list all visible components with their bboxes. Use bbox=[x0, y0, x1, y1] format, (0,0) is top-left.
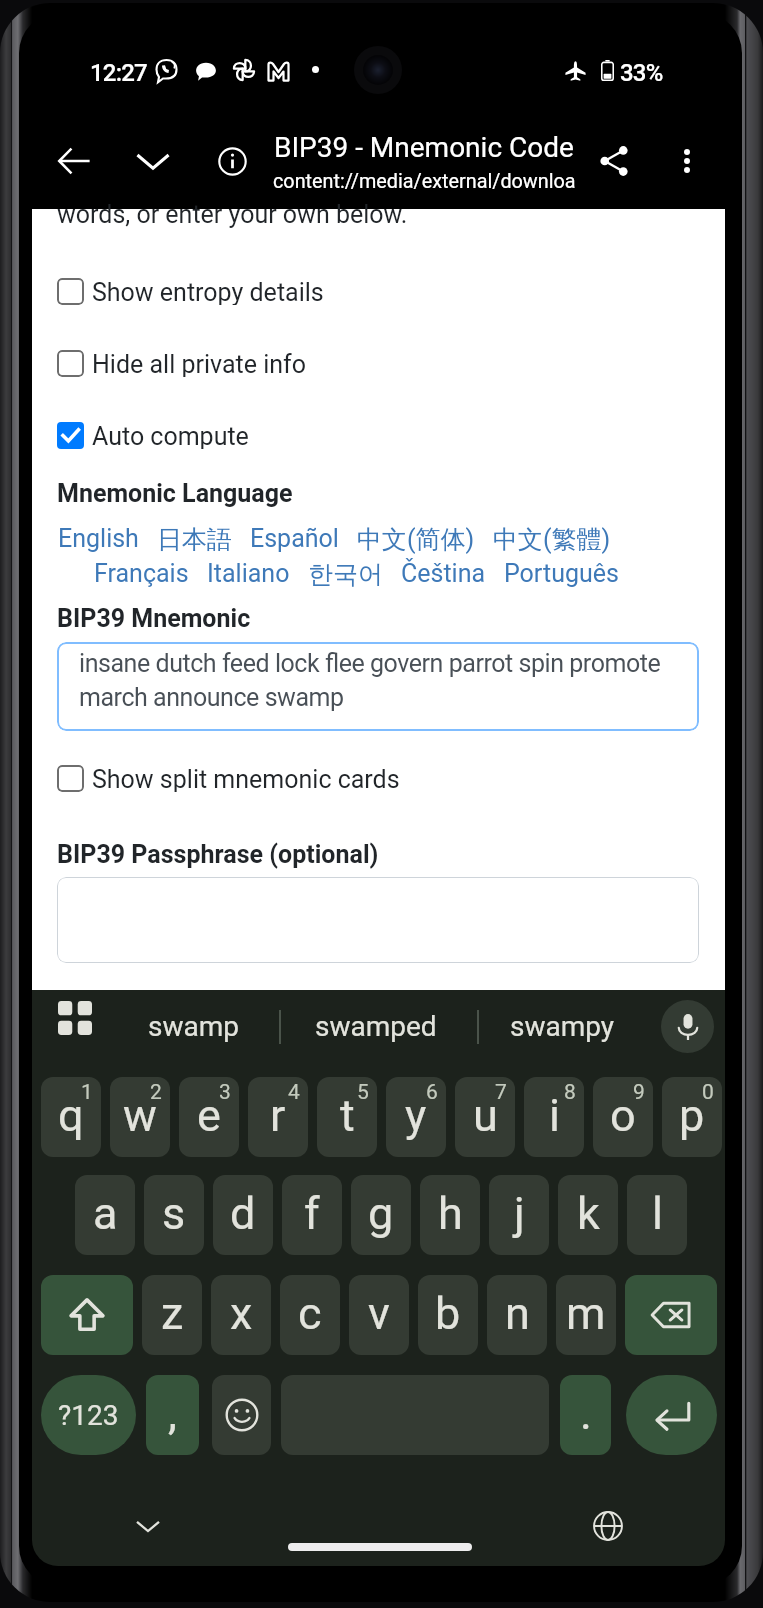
button[interactable]: Show entropy details bbox=[57, 278, 324, 305]
staticText: 0 bbox=[702, 1080, 714, 1105]
button[interactable]: p bbox=[662, 1077, 722, 1157]
button[interactable]: Enter bbox=[626, 1375, 717, 1455]
staticText: y bbox=[405, 1089, 427, 1142]
button[interactable]: Show split mnemonic cards bbox=[57, 765, 400, 792]
button[interactable]: Português bbox=[504, 559, 619, 588]
button[interactable]: u bbox=[455, 1077, 515, 1157]
button[interactable]: Emoji bbox=[212, 1375, 271, 1455]
staticText: e bbox=[197, 1089, 221, 1142]
button[interactable]: Collapse bbox=[126, 134, 180, 188]
button[interactable]: y bbox=[386, 1077, 446, 1157]
staticText: swamped bbox=[315, 1010, 437, 1043]
staticText: d bbox=[230, 1187, 256, 1240]
staticText: 5 bbox=[357, 1080, 369, 1105]
staticText: Mnemonic Language bbox=[57, 479, 293, 508]
button[interactable]: r bbox=[248, 1077, 308, 1157]
staticText: w bbox=[123, 1089, 157, 1142]
button[interactable]: insane dutch feed lock flee govern parro… bbox=[57, 642, 699, 731]
button[interactable]: Auto compute bbox=[57, 422, 249, 449]
staticText: BIP39 - Mnemonic Code bbox=[274, 131, 574, 164]
button[interactable]: a bbox=[75, 1175, 135, 1255]
staticText: insane dutch feed lock flee govern parro… bbox=[79, 649, 679, 712]
staticText: Auto compute bbox=[92, 422, 249, 449]
button[interactable]: t bbox=[317, 1077, 377, 1157]
button[interactable]: o bbox=[593, 1077, 653, 1157]
button[interactable]: v bbox=[349, 1275, 409, 1355]
button[interactable]: . bbox=[560, 1375, 611, 1455]
button[interactable]: ?123 bbox=[41, 1375, 136, 1455]
staticText: x bbox=[230, 1287, 253, 1340]
staticText: b bbox=[435, 1287, 461, 1340]
button[interactable]: x bbox=[211, 1275, 271, 1355]
button[interactable]: c bbox=[280, 1275, 340, 1355]
staticText: 8 bbox=[564, 1080, 576, 1105]
staticText: BIP39 Passphrase (optional) bbox=[57, 840, 379, 869]
button[interactable]: k bbox=[558, 1175, 618, 1255]
button[interactable]: 中文(简体) bbox=[357, 524, 475, 555]
button[interactable]: e bbox=[179, 1077, 239, 1157]
button[interactable]: j bbox=[489, 1175, 549, 1255]
button[interactable]: f bbox=[282, 1175, 342, 1255]
staticText: j bbox=[514, 1187, 525, 1240]
button[interactable]: Čeština bbox=[401, 559, 486, 588]
button[interactable]: d bbox=[213, 1175, 273, 1255]
staticText: swampy bbox=[510, 1010, 615, 1043]
button[interactable]: q bbox=[41, 1077, 101, 1157]
button[interactable]: Page info bbox=[205, 134, 259, 188]
staticText: . bbox=[580, 1387, 592, 1440]
button[interactable]: swamped bbox=[296, 994, 456, 1058]
staticText: n bbox=[505, 1287, 530, 1340]
staticText: , bbox=[168, 1387, 177, 1440]
button[interactable]: 한국어 bbox=[308, 559, 383, 590]
button[interactable]: z bbox=[142, 1275, 202, 1355]
staticText: BIP39 Mnemonic bbox=[57, 604, 251, 633]
staticText: i bbox=[549, 1089, 560, 1142]
staticText: a bbox=[93, 1187, 118, 1240]
button[interactable]: Back bbox=[47, 134, 101, 188]
button[interactable]: swamp bbox=[113, 994, 273, 1058]
button[interactable]: s bbox=[144, 1175, 204, 1255]
button[interactable]: Change language bbox=[583, 1501, 633, 1551]
staticText: q bbox=[58, 1089, 84, 1142]
staticText: l bbox=[652, 1187, 663, 1240]
staticText: m bbox=[566, 1287, 606, 1340]
staticText: 9 bbox=[633, 1080, 645, 1105]
staticText: ?123 bbox=[58, 1399, 119, 1432]
button[interactable]: i bbox=[524, 1077, 584, 1157]
button[interactable]: More options bbox=[660, 134, 714, 188]
button[interactable]: Hide all private info bbox=[57, 350, 307, 377]
button[interactable]: l bbox=[627, 1175, 687, 1255]
staticText: k bbox=[577, 1187, 600, 1240]
button[interactable]: Backspace bbox=[625, 1275, 717, 1355]
button[interactable]: swampy bbox=[482, 994, 642, 1058]
button[interactable]: English bbox=[58, 524, 139, 553]
button[interactable]: Voice input bbox=[661, 1000, 714, 1053]
button[interactable]: 中文(繁體) bbox=[493, 524, 611, 555]
button[interactable]: Keyboard menu bbox=[53, 996, 97, 1040]
staticText: p bbox=[679, 1089, 705, 1142]
button[interactable]: , bbox=[146, 1375, 199, 1455]
button[interactable]: h bbox=[420, 1175, 480, 1255]
button[interactable]: Shift bbox=[41, 1275, 133, 1355]
button[interactable]: Italiano bbox=[207, 559, 290, 588]
button[interactable]: 日本語 bbox=[157, 524, 232, 555]
button[interactable]: Hide keyboard bbox=[123, 1501, 173, 1551]
staticText: 1 bbox=[81, 1080, 93, 1105]
button[interactable]: Share bbox=[587, 134, 641, 188]
button[interactable]: Español bbox=[250, 524, 339, 553]
button[interactable]: w bbox=[110, 1077, 170, 1157]
staticText: swamp bbox=[148, 1010, 239, 1043]
staticText: Show split mnemonic cards bbox=[92, 765, 400, 792]
button[interactable] bbox=[57, 877, 699, 963]
staticText: 3 bbox=[219, 1080, 231, 1105]
staticText: words, or enter your own below. bbox=[57, 200, 408, 229]
button[interactable]: b bbox=[418, 1275, 478, 1355]
staticText: 12:27 bbox=[90, 59, 147, 87]
button[interactable]: Français bbox=[94, 559, 189, 588]
staticText: f bbox=[304, 1187, 320, 1240]
button[interactable]: m bbox=[556, 1275, 616, 1355]
staticText: 6 bbox=[426, 1080, 438, 1105]
button[interactable]: g bbox=[351, 1175, 411, 1255]
button[interactable]: n bbox=[487, 1275, 547, 1355]
